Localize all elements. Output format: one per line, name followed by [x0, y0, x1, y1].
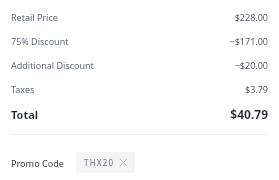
staticText: $40.79 — [230, 106, 268, 122]
button[interactable]: Retail Price — [11, 5, 268, 29]
staticText: THX20 — [84, 157, 115, 168]
button[interactable]: Total — [11, 101, 268, 127]
staticText: Promo Code — [11, 157, 64, 169]
staticText: Taxes — [11, 83, 35, 95]
button[interactable]: THX20 — [76, 152, 135, 173]
staticText: $3.79 — [244, 83, 268, 95]
staticText: 75% Discount — [11, 35, 69, 47]
staticText: Retail Price — [11, 11, 58, 23]
other: Remove promo code — [120, 159, 127, 166]
button[interactable]: 75% Discount — [11, 29, 268, 53]
staticText: Additional Discount — [11, 59, 94, 71]
staticText: −$20.00 — [234, 59, 268, 71]
staticText: $228.00 — [234, 11, 268, 23]
button[interactable]: Additional Discount — [11, 53, 268, 77]
button[interactable]: Taxes — [11, 77, 268, 101]
staticText: Total — [11, 107, 39, 122]
staticText: −$171.00 — [229, 35, 268, 47]
